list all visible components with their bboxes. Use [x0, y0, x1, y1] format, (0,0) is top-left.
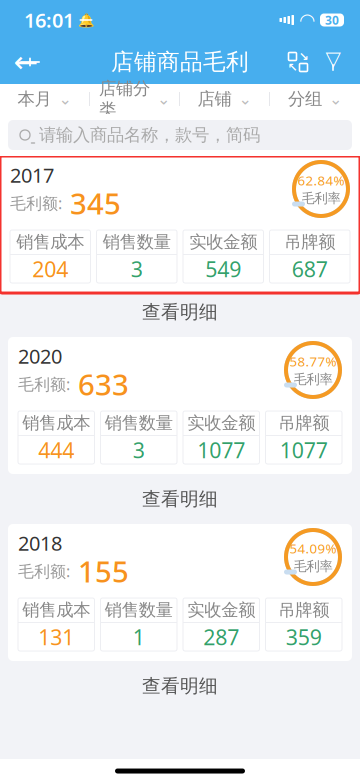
staticText: 549 [205, 255, 241, 283]
staticText: 查看明细 [142, 487, 218, 510]
staticText: 销售成本 [22, 599, 90, 621]
staticText: 30 [325, 12, 339, 28]
staticText: 1 [133, 623, 145, 651]
staticText: 16:01 [24, 7, 74, 33]
staticText: 🔔 [77, 12, 94, 28]
staticText: 分组 [288, 88, 322, 110]
staticText: 58.77% [289, 352, 336, 370]
button[interactable]: 店铺 [197, 82, 251, 116]
staticText: 287 [203, 623, 239, 651]
button[interactable]: 筛选 [316, 40, 350, 84]
button[interactable]: 查看明细 [0, 669, 360, 703]
button[interactable]: 请输入商品名称，款号，简码 [8, 120, 352, 150]
staticText: ← [13, 45, 38, 79]
staticText: 2020 [18, 343, 62, 369]
staticText: 2018 [18, 530, 62, 556]
staticText: 店铺 [197, 88, 231, 110]
button[interactable]: 返回 [8, 40, 52, 84]
staticText: 131 [38, 623, 74, 651]
staticText: ↘ [298, 50, 308, 63]
staticText: 54.09% [289, 539, 336, 557]
staticText: ▽ [325, 47, 340, 70]
staticText: ◠ [300, 9, 314, 31]
staticText: 3 [133, 436, 145, 464]
staticText: ⌄ [157, 90, 170, 108]
staticText: 毛利额: [10, 192, 62, 214]
staticText: 1077 [280, 436, 328, 464]
staticText: 店铺分类 [99, 78, 150, 120]
staticText: 销售成本 [22, 412, 90, 434]
staticText: 毛利率 [301, 190, 340, 207]
staticText: ⌄ [238, 90, 251, 108]
staticText: 155 [78, 551, 129, 590]
staticText: 3 [131, 255, 143, 283]
staticText: 销售数量 [103, 231, 171, 253]
staticText: 2017 [10, 162, 54, 188]
staticText: 359 [286, 623, 322, 651]
staticText: 345 [70, 183, 121, 222]
staticText: 销售成本 [16, 231, 84, 253]
staticText: 毛利额: [18, 373, 70, 395]
staticText: 请输入商品名称，款号，简码 [39, 124, 260, 146]
staticText: 1077 [197, 436, 245, 464]
staticText: 查看明细 [142, 300, 218, 323]
staticText: 销售数量 [105, 599, 173, 621]
staticText: ⌄ [58, 90, 71, 108]
staticText: 吊牌额 [284, 231, 335, 253]
staticText: 实收金额 [187, 599, 255, 621]
staticText: 687 [292, 255, 328, 283]
staticText: ↖ [287, 61, 297, 74]
button[interactable]: 分组 [288, 82, 342, 116]
staticText: 销售数量 [105, 412, 173, 434]
button[interactable]: 对比 [280, 40, 316, 84]
staticText: 444 [38, 436, 74, 464]
button[interactable]: 店铺分类 [99, 72, 170, 126]
button[interactable]: 查看明细 [0, 295, 360, 329]
staticText: 店铺商品毛利 [111, 48, 249, 76]
button[interactable]: 本月 [17, 82, 71, 116]
staticText: 吊牌额 [278, 412, 329, 434]
staticText: 实收金额 [189, 231, 257, 253]
staticText: 查看明细 [142, 674, 218, 697]
staticText: 本月 [17, 88, 51, 110]
staticText: 吊牌额 [278, 599, 329, 621]
staticText: 633 [78, 364, 129, 403]
staticText: 204 [32, 255, 68, 283]
staticText: 毛利额: [18, 560, 70, 582]
staticText: 毛利率 [293, 558, 332, 575]
staticText: 实收金额 [187, 412, 255, 434]
staticText: 毛利率 [293, 371, 332, 388]
staticText: ⌄ [329, 90, 342, 108]
button[interactable]: 查看明细 [0, 482, 360, 516]
staticText: 62.84% [297, 171, 344, 189]
